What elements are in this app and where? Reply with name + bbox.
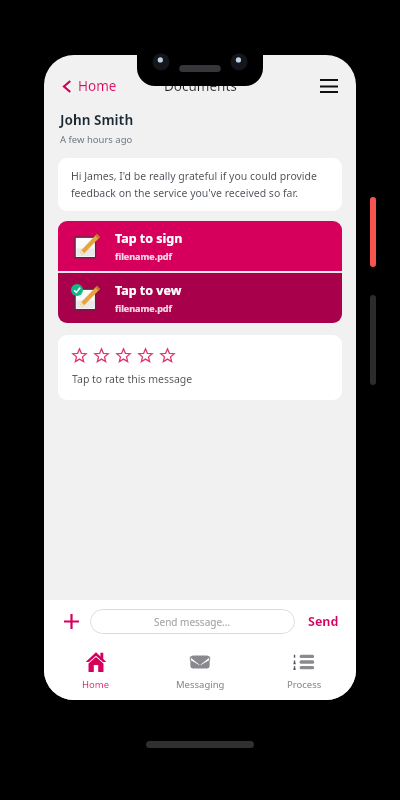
staticText: Tap to sign [115, 230, 183, 247]
staticText: A few hours ago [60, 133, 133, 146]
button[interactable]: Tap to rate this message [58, 335, 342, 400]
staticText: John Smith [60, 111, 134, 129]
staticText: Send message... [154, 615, 231, 629]
button[interactable]: Hi James, I'd be really grateful if you … [58, 158, 342, 211]
button[interactable]: Messaging [148, 645, 252, 697]
staticText: Hi James, I'd be really grateful if you … [71, 169, 317, 183]
button[interactable]: Tap to vew [58, 273, 342, 323]
staticText: filename.pdf [115, 302, 172, 314]
staticText: Tap to rate this message [72, 372, 193, 386]
button[interactable]: Home [58, 74, 121, 98]
button[interactable]: Tap to sign [58, 221, 342, 271]
staticText: Send [308, 613, 339, 630]
button[interactable]: Process [252, 645, 356, 697]
staticText: feedback on the service you've received … [71, 186, 298, 200]
button[interactable]: Home [44, 645, 148, 697]
staticText: Home [82, 678, 110, 691]
button[interactable]: Send message... [90, 609, 295, 634]
staticText: Documents [164, 77, 237, 95]
button[interactable]: Add attachment [58, 608, 84, 634]
staticText: filename.pdf [115, 250, 172, 262]
staticText: Process [287, 678, 322, 691]
staticText: Home [78, 77, 117, 95]
staticText: Tap to vew [115, 282, 182, 299]
staticText: Messaging [176, 678, 225, 691]
button[interactable]: Send [305, 609, 342, 634]
button[interactable]: Menu [316, 73, 342, 99]
